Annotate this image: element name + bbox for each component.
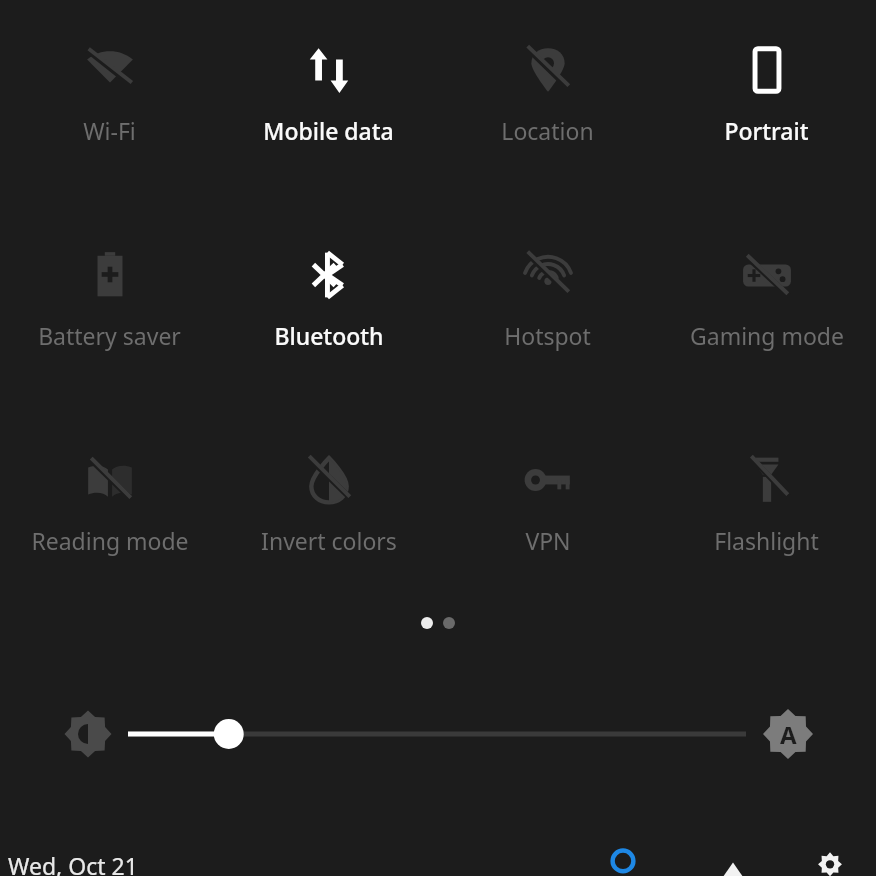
button[interactable]: VPN bbox=[522, 454, 574, 556]
button[interactable]: Settings bbox=[812, 850, 858, 876]
button[interactable]: Brightness bbox=[62, 708, 114, 760]
button[interactable]: Wi-Fi bbox=[83, 44, 136, 146]
button[interactable]: Account bbox=[714, 850, 760, 876]
staticText: Location bbox=[501, 115, 594, 146]
staticText: Reading mode bbox=[31, 525, 189, 556]
staticText: Mobile data bbox=[263, 115, 394, 146]
button[interactable]: Flashlight bbox=[714, 454, 819, 556]
staticText: VPN bbox=[525, 525, 571, 556]
staticText: Hotspot bbox=[504, 320, 591, 351]
staticText: Gaming mode bbox=[690, 320, 844, 351]
button[interactable]: Location bbox=[501, 44, 594, 146]
button[interactable]: Hotspot bbox=[504, 249, 591, 351]
button[interactable]: Invert colors bbox=[261, 454, 397, 556]
button[interactable]: Battery saver bbox=[38, 249, 181, 351]
button[interactable]: Portrait bbox=[724, 44, 809, 146]
button[interactable]: Mobile data bbox=[263, 44, 394, 146]
staticText: A bbox=[780, 718, 797, 751]
staticText: Bluetooth bbox=[274, 320, 384, 351]
button[interactable]: User bbox=[604, 850, 650, 876]
staticText: Portrait bbox=[724, 115, 809, 146]
button[interactable]: Auto brightness bbox=[762, 708, 814, 760]
staticText: Battery saver bbox=[38, 320, 181, 351]
staticText: Wed, Oct 21 bbox=[8, 850, 138, 876]
button[interactable]: Bluetooth bbox=[274, 249, 384, 351]
button[interactable]: Gaming mode bbox=[690, 249, 844, 351]
staticText: Wi-Fi bbox=[83, 115, 136, 146]
button[interactable]: Reading mode bbox=[31, 454, 189, 556]
staticText: Flashlight bbox=[714, 525, 819, 556]
staticText: Invert colors bbox=[261, 525, 397, 556]
button[interactable]: Brightness slider bbox=[128, 710, 746, 758]
